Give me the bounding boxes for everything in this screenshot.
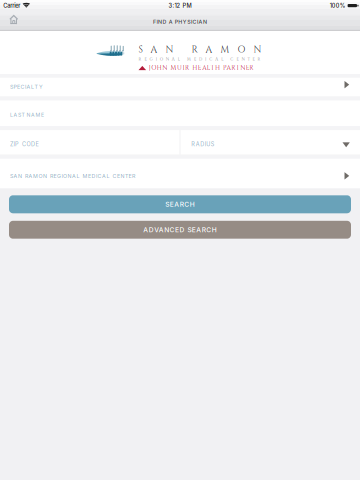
button[interactable]: Home [0, 13, 27, 31]
staticText: JOHN MUIR HEALTH PARTNER [149, 64, 253, 72]
staticText: 100% [330, 2, 346, 9]
staticText: 3:12 PM [168, 2, 191, 9]
staticText: ADVANCED SEARCH [143, 226, 217, 234]
staticText: ZIP CODE [10, 141, 38, 148]
staticText: RADIUS [191, 141, 215, 148]
staticText: Carrier [3, 2, 20, 9]
staticText: SAN RAMON REGIONAL MEDICAL CENTER [10, 173, 135, 179]
button[interactable]: ADVANCED SEARCH [9, 221, 351, 239]
staticText: SPECIALTY [10, 83, 43, 90]
staticText: LAST NAME [10, 112, 44, 118]
staticText: SEARCH [165, 200, 195, 208]
staticText: REGIONAL MEDICAL CENTER [138, 56, 261, 62]
staticText: FIND A PHYSICIAN [153, 18, 207, 25]
staticText: SAN RAMON [138, 43, 261, 56]
button[interactable]: SEARCH [9, 195, 351, 213]
button[interactable]: RADIUS [180, 130, 360, 155]
button[interactable]: SAN RAMON REGIONAL MEDICAL CENTER [0, 159, 360, 188]
button[interactable]: SPECIALTY [0, 78, 360, 97]
